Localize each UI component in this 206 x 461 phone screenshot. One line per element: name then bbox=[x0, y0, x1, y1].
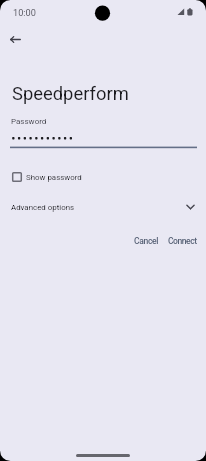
button[interactable]: Show password bbox=[8, 168, 82, 186]
staticText: Speedperform bbox=[12, 83, 129, 105]
button[interactable]: Connect bbox=[163, 232, 202, 250]
button[interactable]: Navigate up bbox=[0, 24, 30, 54]
staticText: 10:00 bbox=[13, 7, 36, 18]
button[interactable]: Advanced options bbox=[0, 197, 206, 217]
staticText: Cancel bbox=[134, 236, 159, 246]
staticText: Connect bbox=[168, 236, 197, 246]
staticText: Advanced options bbox=[11, 203, 75, 212]
staticText: Show password bbox=[26, 173, 82, 182]
staticText: Password bbox=[11, 117, 47, 126]
button[interactable]: Cancel bbox=[129, 232, 164, 250]
